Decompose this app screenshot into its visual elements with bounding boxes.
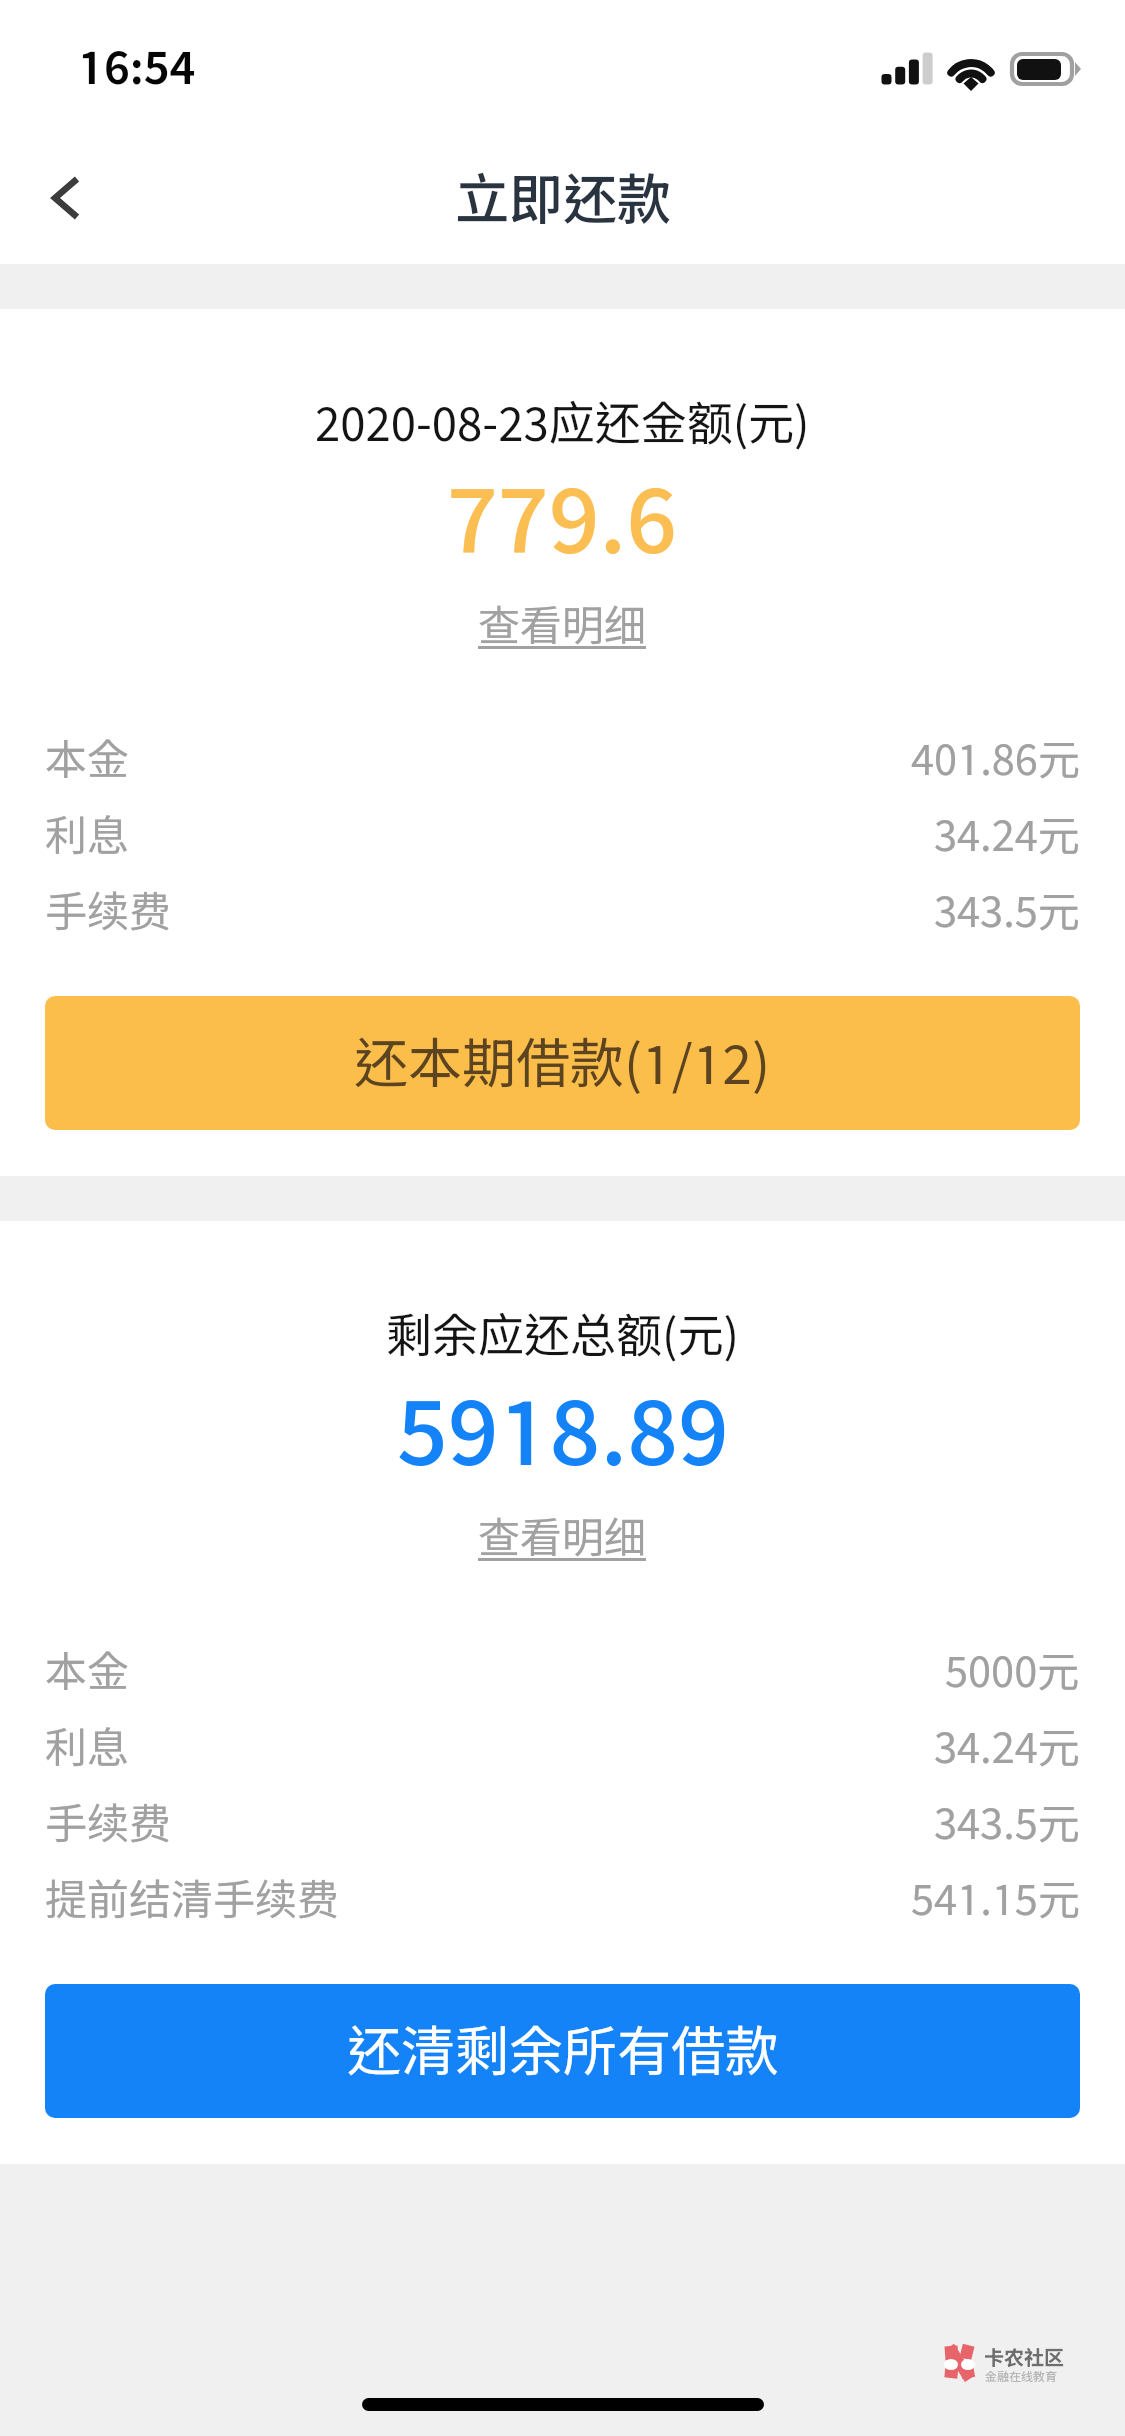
staticText: 手续费 (45, 886, 172, 936)
button[interactable]: 查看明细 (458, 590, 667, 660)
staticText: 利息 (45, 810, 130, 860)
staticText: 还本期借款(1/12) (354, 1031, 771, 1095)
staticText: 立即还款 (455, 167, 671, 231)
staticText: 利息 (45, 1722, 130, 1772)
button[interactable]: 还清剩余所有借款 (45, 1984, 1080, 2118)
staticText: 手续费 (45, 1798, 172, 1848)
staticText: 2020-08-23应还金额(元) (315, 395, 810, 449)
staticText: 401.86元 (911, 734, 1080, 784)
staticText: 16:54 (78, 40, 196, 93)
staticText: 5918.89 (397, 1377, 729, 1483)
staticText: 卡农社区 (984, 2346, 1064, 2370)
staticText: 34.24元 (934, 1722, 1080, 1772)
staticText: 还清剩余所有借款 (347, 2019, 779, 2083)
staticText: 343.5元 (934, 1798, 1080, 1848)
staticText: 剩余应还总额(元) (386, 1307, 739, 1361)
staticText: 提前结清手续费 (45, 1874, 340, 1924)
staticText: 金融在线教育 (985, 2369, 1058, 2383)
button[interactable]: 还本期借款(1/12) (45, 996, 1080, 1130)
staticText: 查看明细 (478, 600, 647, 650)
button[interactable]: Back (20, 154, 108, 242)
staticText: 779.6 (447, 465, 678, 571)
staticText: 5000元 (945, 1646, 1080, 1696)
staticText: 查看明细 (478, 1512, 647, 1562)
staticText: 34.24元 (934, 810, 1080, 860)
staticText: 541.15元 (911, 1874, 1080, 1924)
staticText: 本金 (45, 1646, 130, 1696)
staticText: 本金 (45, 734, 130, 784)
button[interactable]: 查看明细 (458, 1502, 667, 1572)
staticText: 343.5元 (934, 886, 1080, 936)
